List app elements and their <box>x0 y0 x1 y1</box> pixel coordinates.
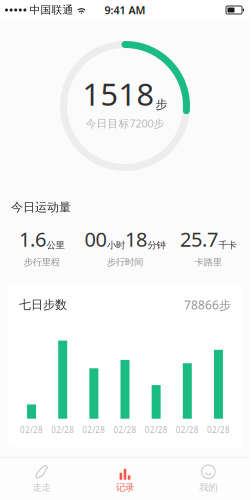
staticText: 步 <box>155 97 167 112</box>
staticText: 02/28 <box>82 425 105 435</box>
staticText: 18 <box>125 226 147 252</box>
staticText: 七日步数 <box>19 297 67 312</box>
staticText: 卡路里 <box>195 256 222 268</box>
button[interactable]: 我的 <box>167 457 250 500</box>
staticText: 今日目标7200步 <box>85 116 164 130</box>
staticText: 记录 <box>116 482 134 493</box>
staticText: 00 <box>84 226 106 252</box>
staticText: 分钟 <box>147 239 165 251</box>
staticText: 步行时间 <box>107 256 143 268</box>
staticText: 小时 <box>107 239 125 251</box>
staticText: 1518 <box>82 74 154 114</box>
staticText: 02/28 <box>176 425 199 435</box>
staticText: 今日运动量 <box>11 200 71 215</box>
staticText: 02/28 <box>51 425 74 435</box>
staticText: 1.6 <box>19 226 46 252</box>
button[interactable]: 记录 <box>83 457 167 500</box>
staticText: 02/28 <box>145 425 168 435</box>
staticText: 02/28 <box>207 425 230 435</box>
staticText: 步行里程 <box>24 256 60 268</box>
staticText: 公里 <box>46 239 64 251</box>
button[interactable]: 走走 <box>0 457 83 500</box>
staticText: 千卡 <box>219 239 237 251</box>
staticText: 中国联通 <box>29 3 73 16</box>
staticText: 02/28 <box>113 425 136 435</box>
staticText: 走走 <box>33 482 51 493</box>
staticText: 02/28 <box>20 425 43 435</box>
staticText: 78866步 <box>184 297 231 313</box>
staticText: 25.7 <box>180 226 218 252</box>
staticText: 我的 <box>199 482 217 493</box>
staticText: 9:41 AM <box>104 3 145 17</box>
